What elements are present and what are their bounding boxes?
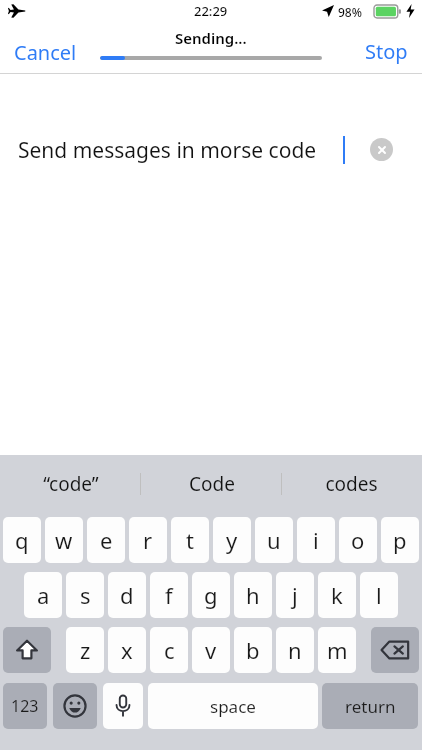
button[interactable]: Send messages in morse code — [0, 130, 422, 170]
staticText: q — [15, 525, 29, 555]
button[interactable]: f — [150, 572, 188, 618]
button[interactable]: Backspace — [371, 627, 419, 673]
staticText: l — [376, 580, 382, 610]
staticText: Send messages in morse code — [18, 136, 317, 165]
staticText: Stop — [365, 38, 408, 65]
staticText: 98% — [338, 4, 362, 20]
button[interactable]: Stop — [365, 38, 408, 65]
button[interactable]: Emoji — [53, 683, 97, 729]
staticText: t — [186, 525, 194, 555]
button[interactable]: n — [276, 627, 314, 673]
staticText: n — [288, 635, 302, 665]
staticText: s — [80, 580, 91, 610]
staticText: h — [246, 580, 260, 610]
staticText: i — [313, 525, 319, 555]
button[interactable]: space — [148, 683, 318, 729]
button[interactable]: t — [171, 517, 209, 563]
staticText: f — [165, 580, 173, 610]
button[interactable]: 123 — [3, 683, 47, 729]
button[interactable]: i — [297, 517, 335, 563]
button[interactable]: h — [234, 572, 272, 618]
staticText: e — [100, 525, 113, 555]
button[interactable]: k — [318, 572, 356, 618]
button[interactable]: x — [108, 627, 146, 673]
staticText: “code” — [43, 471, 99, 497]
button[interactable]: g — [192, 572, 230, 618]
button[interactable]: d — [108, 572, 146, 618]
staticText: z — [80, 635, 91, 665]
staticText: Sending... — [175, 28, 247, 48]
button[interactable]: j — [276, 572, 314, 618]
staticText: k — [331, 580, 343, 610]
staticText: d — [120, 580, 134, 610]
staticText: c — [164, 635, 175, 665]
button[interactable]: z — [66, 627, 104, 673]
staticText: Cancel — [14, 39, 77, 66]
staticText: x — [121, 635, 133, 665]
button[interactable]: o — [339, 517, 377, 563]
button[interactable]: Dictation — [103, 683, 143, 729]
staticText: g — [204, 580, 218, 610]
button[interactable]: v — [192, 627, 230, 673]
button[interactable]: l — [360, 572, 398, 618]
button[interactable]: w — [45, 517, 83, 563]
button[interactable]: p — [381, 517, 419, 563]
staticText: codes — [325, 471, 378, 497]
staticText: b — [246, 635, 260, 665]
button[interactable]: Cancel — [14, 39, 77, 66]
staticText: 22:29 — [194, 2, 228, 20]
button[interactable]: b — [234, 627, 272, 673]
button[interactable]: c — [150, 627, 188, 673]
button[interactable]: codes — [281, 455, 422, 512]
staticText: space — [210, 695, 256, 718]
staticText: o — [351, 525, 365, 555]
button[interactable]: q — [3, 517, 41, 563]
staticText: a — [37, 580, 50, 610]
button[interactable]: u — [255, 517, 293, 563]
staticText: p — [393, 525, 407, 555]
button[interactable]: Code — [141, 455, 282, 512]
staticText: j — [292, 580, 298, 610]
staticText: r — [143, 525, 153, 555]
button[interactable]: Clear text — [370, 138, 393, 161]
button[interactable]: return — [322, 683, 418, 729]
staticText: u — [267, 525, 281, 555]
button[interactable]: r — [129, 517, 167, 563]
button[interactable]: “code” — [0, 455, 141, 512]
button[interactable]: e — [87, 517, 125, 563]
staticText: return — [345, 695, 396, 718]
button[interactable]: y — [213, 517, 251, 563]
staticText: m — [327, 635, 348, 665]
staticText: 123 — [11, 695, 39, 717]
staticText: w — [55, 525, 73, 555]
staticText: Code — [189, 471, 235, 497]
staticText: y — [226, 525, 238, 555]
staticText: v — [205, 635, 217, 665]
button[interactable]: s — [66, 572, 104, 618]
button[interactable]: m — [318, 627, 356, 673]
button[interactable]: a — [24, 572, 62, 618]
button[interactable]: Shift — [3, 627, 51, 673]
